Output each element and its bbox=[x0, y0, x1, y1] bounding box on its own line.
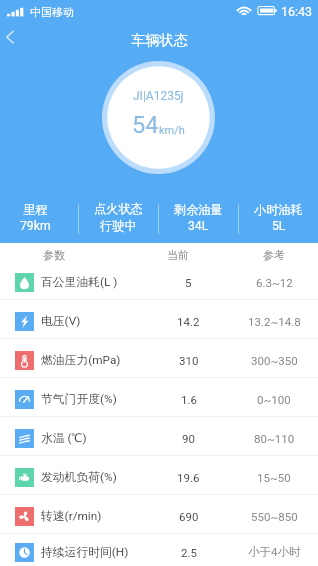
staticText: 2.5 bbox=[181, 546, 197, 559]
staticText: 百公里油耗(L ) bbox=[41, 275, 118, 290]
staticText: 300~350 bbox=[251, 354, 298, 367]
button[interactable]: 持续运行时间(H) bbox=[0, 534, 318, 566]
staticText: 里程 bbox=[23, 202, 48, 217]
staticText: 79km bbox=[20, 219, 51, 233]
staticText: 剩余油量 bbox=[174, 202, 223, 217]
staticText: 水温 (℃) bbox=[41, 431, 87, 446]
staticText: 54 bbox=[132, 111, 159, 139]
staticText: 80~110 bbox=[254, 432, 295, 445]
staticText: 持续运行时间(H) bbox=[41, 545, 129, 560]
staticText: 中国移动 bbox=[30, 5, 74, 19]
staticText: 节气门开度(%) bbox=[41, 392, 117, 407]
staticText: 燃油压力(mPa) bbox=[41, 353, 121, 368]
button[interactable]: 小时油耗 bbox=[239, 202, 318, 233]
staticText: 参考 bbox=[263, 248, 285, 262]
staticText: 小时油耗 bbox=[254, 202, 303, 217]
staticText: 小于4小时 bbox=[248, 545, 301, 559]
button[interactable]: 节气门开度(%) bbox=[0, 378, 318, 417]
staticText: 车辆状态 bbox=[131, 31, 188, 49]
staticText: 转速(r/min) bbox=[41, 509, 102, 524]
button[interactable]: 燃油压力(mPa) bbox=[0, 339, 318, 378]
button[interactable]: 剩余油量 bbox=[159, 202, 238, 233]
staticText: 16:43 bbox=[281, 4, 313, 19]
staticText: 发动机负荷(%) bbox=[41, 470, 117, 485]
staticText: 19.6 bbox=[177, 471, 200, 484]
staticText: 34L bbox=[188, 219, 209, 233]
staticText: 550~850 bbox=[251, 510, 298, 523]
staticText: 14.2 bbox=[177, 315, 200, 328]
staticText: 15~50 bbox=[257, 471, 291, 484]
staticText: 电压(V) bbox=[41, 314, 81, 329]
staticText: 1.6 bbox=[181, 393, 197, 406]
staticText: 5L bbox=[272, 219, 286, 233]
staticText: 310 bbox=[179, 354, 199, 367]
staticText: 90 bbox=[182, 432, 195, 445]
staticText: JI|A1235j bbox=[133, 89, 184, 103]
staticText: 0~100 bbox=[257, 393, 291, 406]
button[interactable]: 电压(V) bbox=[0, 300, 318, 339]
staticText: 点火状态 bbox=[94, 201, 143, 216]
staticText: 参数 bbox=[43, 248, 65, 262]
staticText: 13.2~14.8 bbox=[248, 315, 301, 328]
staticText: 690 bbox=[179, 510, 199, 523]
staticText: 行驶中 bbox=[100, 218, 137, 233]
button[interactable]: 水温 (℃) bbox=[0, 417, 318, 456]
staticText: km/h bbox=[159, 124, 185, 137]
button[interactable]: 百公里油耗(L ) bbox=[0, 261, 318, 300]
button[interactable]: 发动机负荷(%) bbox=[0, 456, 318, 495]
staticText: 5 bbox=[185, 276, 192, 289]
button[interactable]: 里程 bbox=[0, 202, 74, 233]
button[interactable]: 转速(r/min) bbox=[0, 495, 318, 534]
staticText: 6.3~12 bbox=[256, 276, 293, 289]
staticText: 当前 bbox=[167, 248, 189, 262]
button[interactable]: Back bbox=[0, 24, 30, 54]
button[interactable]: 点火状态 bbox=[79, 201, 158, 233]
